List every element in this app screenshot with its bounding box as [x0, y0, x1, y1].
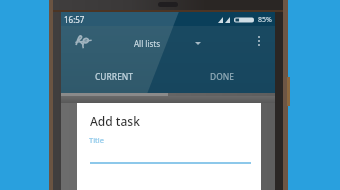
- staticText: 16:57: [64, 14, 85, 25]
- staticText: Title: [89, 135, 104, 145]
- staticText: DONE: [210, 71, 234, 82]
- staticText: All lists: [134, 38, 160, 49]
- button[interactable]: More options: [250, 31, 267, 51]
- staticText: 85%: [258, 15, 272, 25]
- button[interactable]: DONE: [168, 64, 275, 87]
- staticText: CURRENT: [95, 71, 134, 82]
- button[interactable]: CURRENT: [61, 64, 168, 87]
- button[interactable]: App logo: [75, 34, 92, 46]
- staticText: Add task: [90, 113, 140, 129]
- button[interactable]: All lists: [134, 37, 201, 49]
